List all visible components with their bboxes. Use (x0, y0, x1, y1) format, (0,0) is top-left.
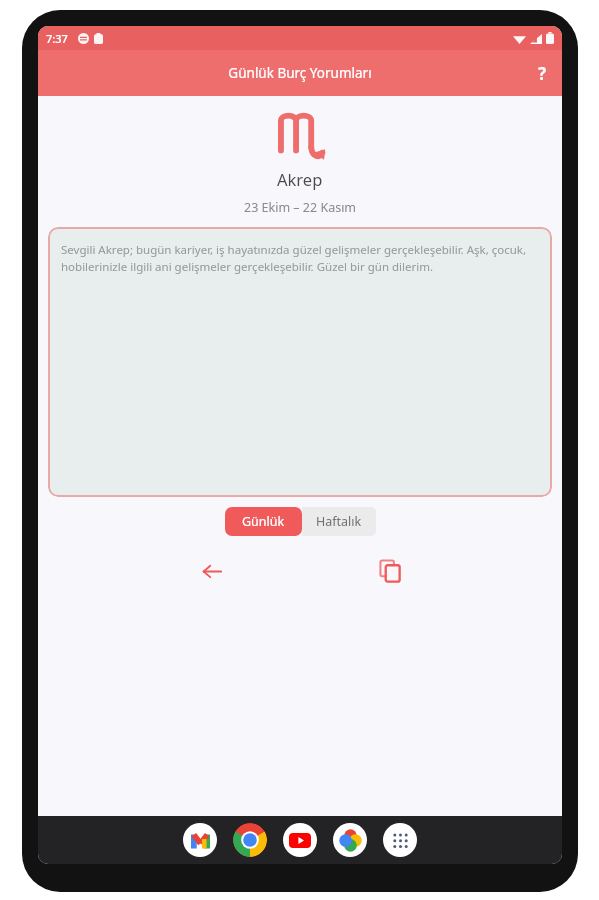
button[interactable]: Help (522, 53, 562, 93)
button[interactable]: All apps (383, 823, 417, 857)
staticText: ? (538, 62, 547, 85)
staticText: 23 Ekim – 22 Kasım (244, 199, 357, 216)
button[interactable]: Gmail (183, 823, 217, 857)
button[interactable]: Chrome (233, 823, 267, 857)
button[interactable]: Photos (333, 823, 367, 857)
staticText: Günlük Burç Yorumları (228, 64, 372, 82)
button[interactable]: Sevgili Akrep; bugün kariyer, iş hayatın… (48, 227, 552, 497)
staticText: Akrep (277, 168, 323, 190)
button[interactable]: Haftalık (302, 507, 376, 536)
staticText: 7:37 (46, 31, 68, 46)
button[interactable]: YouTube (283, 823, 317, 857)
staticText: Günlük (242, 513, 285, 530)
staticText: Haftalık (316, 513, 362, 530)
button[interactable]: Copy (371, 551, 411, 591)
button[interactable]: Günlük (225, 507, 302, 536)
staticText: Sevgili Akrep; bugün kariyer, iş hayatın… (61, 242, 540, 275)
button[interactable]: Back (192, 551, 232, 591)
